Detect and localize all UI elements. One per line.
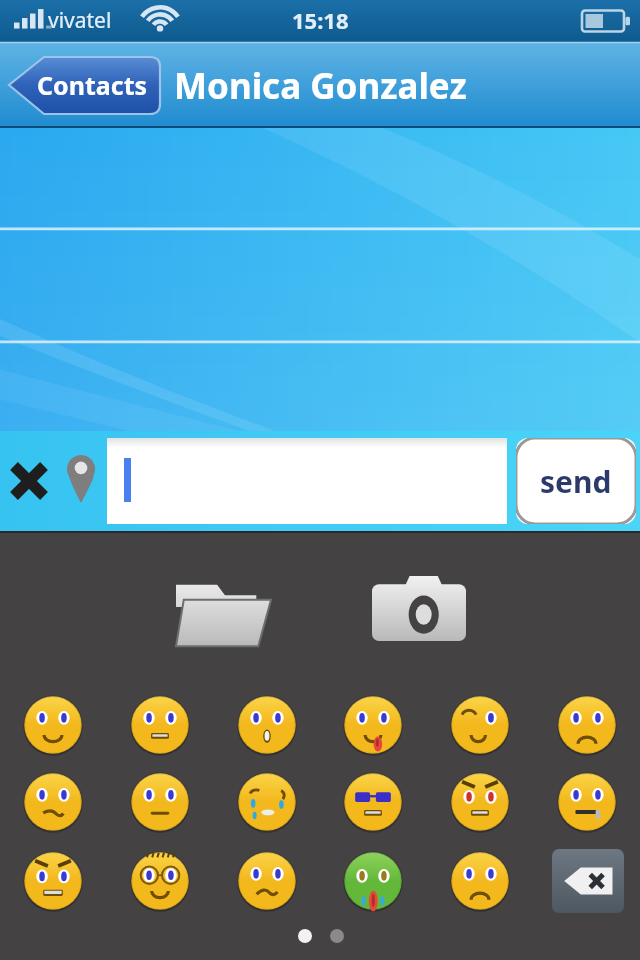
- staticText: send: [540, 461, 612, 502]
- button[interactable]: Contacts: [8, 56, 160, 114]
- button[interactable]: Emoji: [448, 849, 512, 913]
- staticText: Monica Gonzalez: [174, 62, 467, 110]
- button[interactable]: Take photo: [372, 575, 466, 641]
- button[interactable]: Emoji: [341, 770, 405, 834]
- button[interactable]: Emoji: [128, 770, 192, 834]
- staticText: vivatel: [48, 6, 112, 35]
- button[interactable]: Emoji: [448, 770, 512, 834]
- button[interactable]: [107, 438, 507, 524]
- button[interactable]: Emoji: [21, 849, 85, 913]
- button[interactable]: Emoji: [21, 693, 85, 757]
- button[interactable]: Emoji: [555, 770, 619, 834]
- button[interactable]: Emoji: [341, 693, 405, 757]
- button[interactable]: Emoji: [235, 849, 299, 913]
- button[interactable]: Emoji: [555, 693, 619, 757]
- button[interactable]: Emoji: [235, 770, 299, 834]
- staticText: 15:18: [292, 5, 349, 35]
- button[interactable]: send: [516, 438, 636, 524]
- button[interactable]: Emoji: [448, 693, 512, 757]
- button[interactable]: Emoji: [128, 693, 192, 757]
- button[interactable]: Emoji: [235, 693, 299, 757]
- button[interactable]: Backspace: [552, 849, 624, 913]
- button[interactable]: Emoji: [128, 849, 192, 913]
- staticText: Contacts: [37, 68, 148, 102]
- button[interactable]: Emoji: [21, 770, 85, 834]
- button[interactable]: Emoji: [341, 849, 405, 913]
- button[interactable]: Open gallery: [174, 573, 272, 647]
